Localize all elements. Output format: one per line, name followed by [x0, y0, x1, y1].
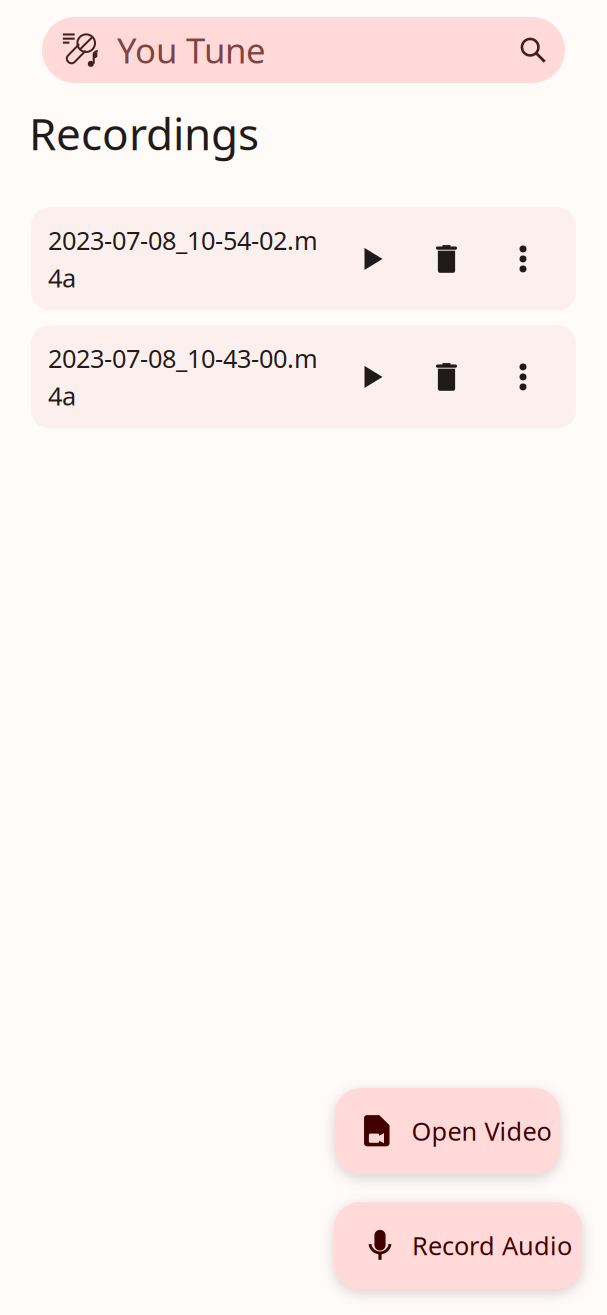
staticText: You Tune	[117, 27, 266, 73]
staticText: 4a	[48, 379, 76, 412]
button[interactable]: Open Video	[335, 1088, 560, 1174]
button[interactable]: More options	[470, 207, 576, 310]
staticText: Recordings	[29, 104, 259, 162]
button[interactable]: You Tune	[42, 17, 565, 83]
staticText: Record Audio	[412, 1229, 572, 1262]
button[interactable]: Record Audio	[334, 1202, 582, 1289]
staticText: 2023-07-08_10-54-02.m	[48, 223, 318, 257]
staticText: 4a	[48, 261, 76, 294]
button[interactable]: Delete	[423, 207, 470, 310]
button[interactable]: Play	[324, 325, 423, 428]
staticText: 2023-07-08_10-43-00.m	[48, 341, 318, 375]
staticText: Open Video	[411, 1114, 551, 1148]
button[interactable]: Delete	[423, 325, 470, 428]
button[interactable]: More options	[470, 325, 576, 428]
button[interactable]: Play	[324, 207, 423, 310]
